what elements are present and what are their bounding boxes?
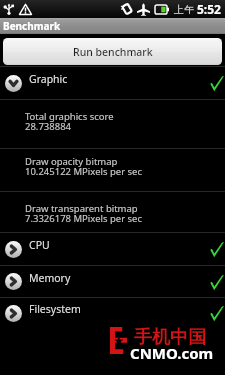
staticText: 5:52: [197, 1, 221, 17]
staticText: Total graphics score: [25, 110, 114, 123]
button[interactable]: Filesystem: [0, 298, 225, 328]
staticText: CNMO.com: [130, 343, 214, 363]
staticText: CPU: [29, 238, 50, 252]
staticText: Memory: [29, 271, 71, 285]
staticText: 上午: [174, 3, 194, 16]
button[interactable]: Run benchmark: [3, 38, 222, 65]
staticText: 28.738884: [25, 120, 72, 133]
staticText: Benchmark: [3, 19, 61, 33]
staticText: Draw transparent bitmap: [25, 202, 138, 215]
button[interactable]: CPU: [0, 233, 225, 265]
button[interactable]: Memory: [0, 266, 225, 297]
other: Airplane mode: [137, 3, 150, 16]
button[interactable]: Graphic: [0, 67, 225, 99]
staticText: 7.3326178 MPixels per sec: [25, 212, 143, 225]
staticText: 10.245122 MPixels per sec: [25, 165, 143, 178]
staticText: 手机中国: [134, 326, 206, 349]
other: USB connected: [3, 3, 15, 15]
staticText: Run benchmark: [73, 45, 153, 59]
other: Warning: [19, 3, 32, 16]
staticText: Filesystem: [29, 302, 81, 316]
other: Battery charging: [155, 5, 169, 14]
staticText: Graphic: [29, 72, 68, 86]
other: Auto rotate: [121, 3, 131, 15]
staticText: Draw opacity bitmap: [25, 155, 118, 168]
